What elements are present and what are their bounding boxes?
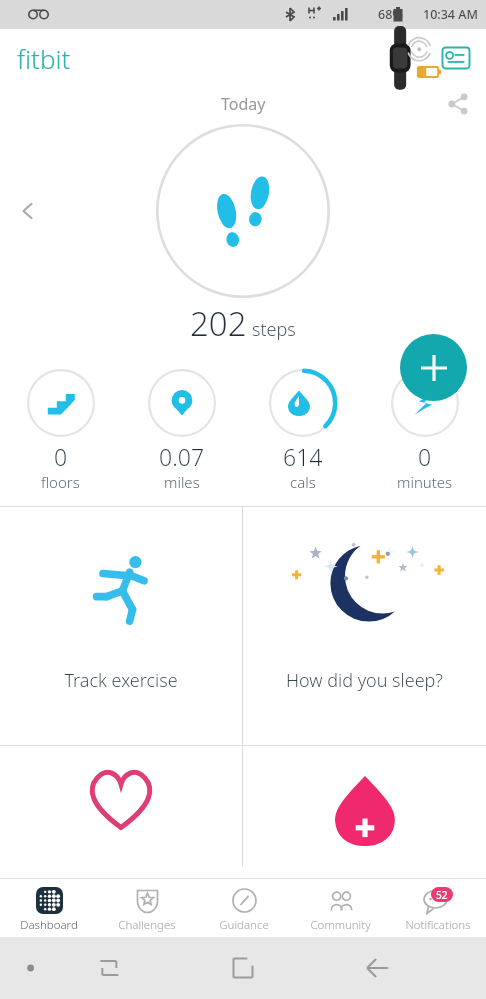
button[interactable]: Track exercise	[0, 507, 242, 745]
staticText: 52	[436, 888, 448, 902]
staticText: 0.07	[159, 441, 205, 472]
staticText: minutes	[397, 472, 453, 492]
staticText: Dashboard	[20, 917, 78, 933]
staticText: floors	[41, 472, 80, 492]
button[interactable]: Dashboard	[0, 879, 98, 937]
staticText: 0	[418, 441, 432, 472]
staticText: 10:34 AM	[423, 6, 478, 23]
button[interactable]: Tracker battery	[380, 36, 436, 80]
staticText: 68%	[378, 6, 403, 23]
staticText: 202	[190, 301, 247, 346]
staticText: How did you sleep?	[286, 668, 443, 693]
button[interactable]: 52	[389, 879, 486, 937]
button[interactable]: Guidance	[195, 879, 292, 937]
button[interactable]: Steps today	[156, 124, 330, 298]
staticText: Guidance	[219, 917, 269, 933]
staticText: 614	[283, 441, 323, 472]
staticText: Notifications	[405, 917, 471, 933]
button[interactable]: Log water	[243, 746, 486, 866]
button[interactable]: How did you sleep	[243, 507, 486, 745]
button[interactable]: Previous	[6, 189, 50, 233]
button[interactable]: 0.07	[121, 368, 242, 492]
staticText: steps	[252, 317, 296, 342]
button[interactable]: Heart rate	[0, 746, 242, 866]
staticText: miles	[164, 472, 200, 492]
button[interactable]: Share	[438, 87, 478, 121]
staticText: Community	[310, 917, 371, 933]
button[interactable]: 0	[364, 368, 486, 492]
staticText: 0	[54, 441, 68, 472]
staticText: Today	[221, 93, 266, 115]
button[interactable]: Community	[292, 879, 389, 937]
staticText: fitbit	[17, 41, 71, 76]
button[interactable]: Challenges	[98, 879, 195, 937]
staticText: cals	[290, 472, 316, 492]
staticText: Challenges	[118, 917, 176, 933]
staticText: Track exercise	[64, 668, 178, 693]
button[interactable]: 614	[242, 368, 364, 492]
button[interactable]: Add	[400, 334, 467, 401]
button[interactable]: 0	[0, 368, 121, 492]
button[interactable]: Account	[436, 38, 476, 78]
